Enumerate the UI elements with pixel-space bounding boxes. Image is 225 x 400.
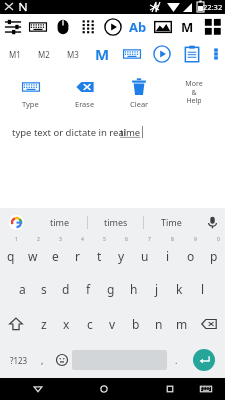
staticText: 22:32: [203, 2, 223, 12]
staticText: a: [19, 281, 26, 297]
staticText: u: [141, 248, 149, 264]
button[interactable]: Play: [100, 14, 125, 40]
button[interactable]: 0: [202, 236, 225, 271]
button[interactable]: Ab: [125, 14, 150, 40]
staticText: f: [86, 281, 91, 297]
button[interactable]: Play: [147, 40, 177, 68]
button[interactable]: l: [191, 271, 214, 306]
button[interactable]: 8: [156, 236, 179, 271]
staticText: e: [52, 248, 59, 264]
button[interactable]: x: [55, 306, 78, 342]
button[interactable]: Type: [6, 70, 55, 114]
staticText: M2: [38, 49, 50, 60]
button[interactable]: M: [87, 40, 117, 68]
staticText: d: [62, 281, 70, 297]
button[interactable]: Google: [0, 208, 32, 236]
button[interactable]: Shift: [0, 306, 32, 342]
button[interactable]: Enter: [193, 349, 215, 371]
button[interactable]: m: [170, 306, 193, 342]
staticText: q: [7, 248, 15, 264]
staticText: Type: [22, 99, 39, 109]
button[interactable]: Emoji: [51, 345, 72, 375]
button[interactable]: Macro grid: [200, 14, 225, 40]
button[interactable]: c: [78, 306, 101, 342]
button[interactable]: Time: [144, 208, 199, 236]
staticText: Time: [161, 216, 182, 228]
staticText: l: [201, 281, 205, 297]
button[interactable]: ,: [34, 345, 51, 375]
button[interactable]: s: [33, 271, 55, 306]
button[interactable]: j: [145, 271, 168, 306]
button[interactable]: Clipboard: [177, 40, 207, 68]
staticText: s: [41, 281, 47, 297]
button[interactable]: M3: [60, 43, 85, 65]
button[interactable]: 4: [66, 236, 88, 271]
button[interactable]: 1: [0, 236, 22, 271]
staticText: M3: [67, 49, 79, 60]
button[interactable]: v: [101, 306, 124, 342]
button[interactable]: Back: [28, 379, 48, 399]
button[interactable]: Recents: [160, 379, 180, 399]
button[interactable]: More & Help: [169, 70, 219, 114]
button[interactable]: M: [175, 14, 200, 40]
staticText: h: [130, 281, 138, 297]
button[interactable]: More options: [207, 40, 225, 68]
button[interactable]: M2: [31, 43, 56, 65]
button[interactable]: ?123: [3, 345, 34, 375]
staticText: o: [187, 248, 195, 264]
staticText: 4: [81, 236, 84, 243]
staticText: 9: [194, 236, 197, 243]
button[interactable]: M1: [2, 43, 27, 65]
button[interactable]: 6: [110, 236, 133, 271]
button[interactable]: 5: [88, 236, 110, 271]
staticText: p: [210, 248, 218, 264]
staticText: ?123: [10, 355, 28, 366]
button[interactable]: g: [99, 271, 122, 306]
button[interactable]: Voice input: [199, 208, 225, 236]
staticText: 0: [217, 236, 220, 243]
staticText: time: [120, 126, 141, 139]
button[interactable]: d: [55, 271, 77, 306]
staticText: 8: [171, 236, 174, 243]
button[interactable]: n: [147, 306, 170, 342]
button[interactable]: b: [124, 306, 147, 342]
button[interactable]: 3: [44, 236, 66, 271]
button[interactable]: 2: [22, 236, 44, 271]
button[interactable]: Home: [94, 379, 114, 399]
staticText: m: [176, 316, 188, 332]
button[interactable]: Clear: [114, 70, 164, 114]
staticText: b: [132, 316, 140, 332]
staticText: i: [166, 248, 170, 264]
button[interactable]: f: [77, 271, 99, 306]
staticText: y: [118, 248, 125, 264]
button[interactable]: Mouse: [50, 14, 75, 40]
button[interactable]: Erase: [60, 70, 109, 114]
button[interactable]: h: [122, 271, 145, 306]
staticText: z: [41, 316, 47, 332]
staticText: g: [107, 281, 115, 297]
staticText: r: [75, 248, 80, 264]
button[interactable]: 9: [179, 236, 202, 271]
button[interactable]: Backspace: [193, 306, 225, 342]
staticText: type text or dictate in real: [12, 126, 129, 139]
staticText: 1: [15, 236, 18, 243]
button[interactable]: .: [167, 345, 186, 375]
button[interactable]: Switch keyboard: [196, 379, 216, 399]
button[interactable]: Keyboard: [25, 14, 50, 40]
button[interactable]: times: [88, 208, 143, 236]
button[interactable]: Keyboard: [117, 40, 147, 68]
button[interactable]: Image: [150, 14, 175, 40]
button[interactable]: time: [32, 208, 87, 236]
staticText: More & Help: [185, 79, 203, 105]
staticText: 7: [148, 236, 151, 243]
staticText: time: [50, 216, 70, 228]
button[interactable]: a: [11, 271, 33, 306]
button[interactable]: Keypad: [75, 14, 100, 40]
button[interactable]: 7: [133, 236, 156, 271]
button[interactable]: Settings sliders: [0, 14, 25, 40]
button[interactable]: k: [168, 271, 191, 306]
staticText: x: [63, 316, 70, 332]
button[interactable]: z: [32, 306, 55, 342]
staticText: times: [104, 216, 128, 228]
